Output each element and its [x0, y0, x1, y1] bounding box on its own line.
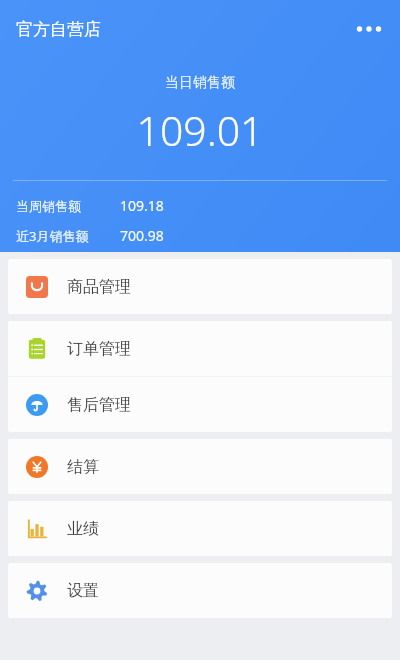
staticText: 商品管理 [67, 277, 131, 297]
staticText: 结算 [67, 457, 99, 477]
staticText: 109.01 [0, 102, 400, 158]
button[interactable]: 业绩 [8, 501, 392, 556]
staticText: 售后管理 [67, 395, 131, 415]
staticText: 官方自营店 [16, 19, 101, 40]
button[interactable]: 结算 [8, 439, 392, 494]
staticText: 109.18 [120, 196, 164, 215]
button[interactable]: 设置 [8, 563, 392, 618]
button[interactable]: 订单管理 [8, 321, 392, 376]
staticText: 订单管理 [67, 339, 131, 359]
staticText: 当日销售额 [0, 74, 400, 92]
staticText: 700.98 [120, 226, 164, 245]
button[interactable]: 售后管理 [8, 377, 392, 432]
button[interactable]: 商品管理 [8, 259, 392, 314]
button[interactable]: More options [346, 6, 392, 52]
staticText: 设置 [67, 581, 99, 601]
staticText: 当周销售额 [16, 198, 81, 214]
staticText: 业绩 [67, 519, 99, 539]
staticText: 近3月销售额 [16, 227, 89, 245]
